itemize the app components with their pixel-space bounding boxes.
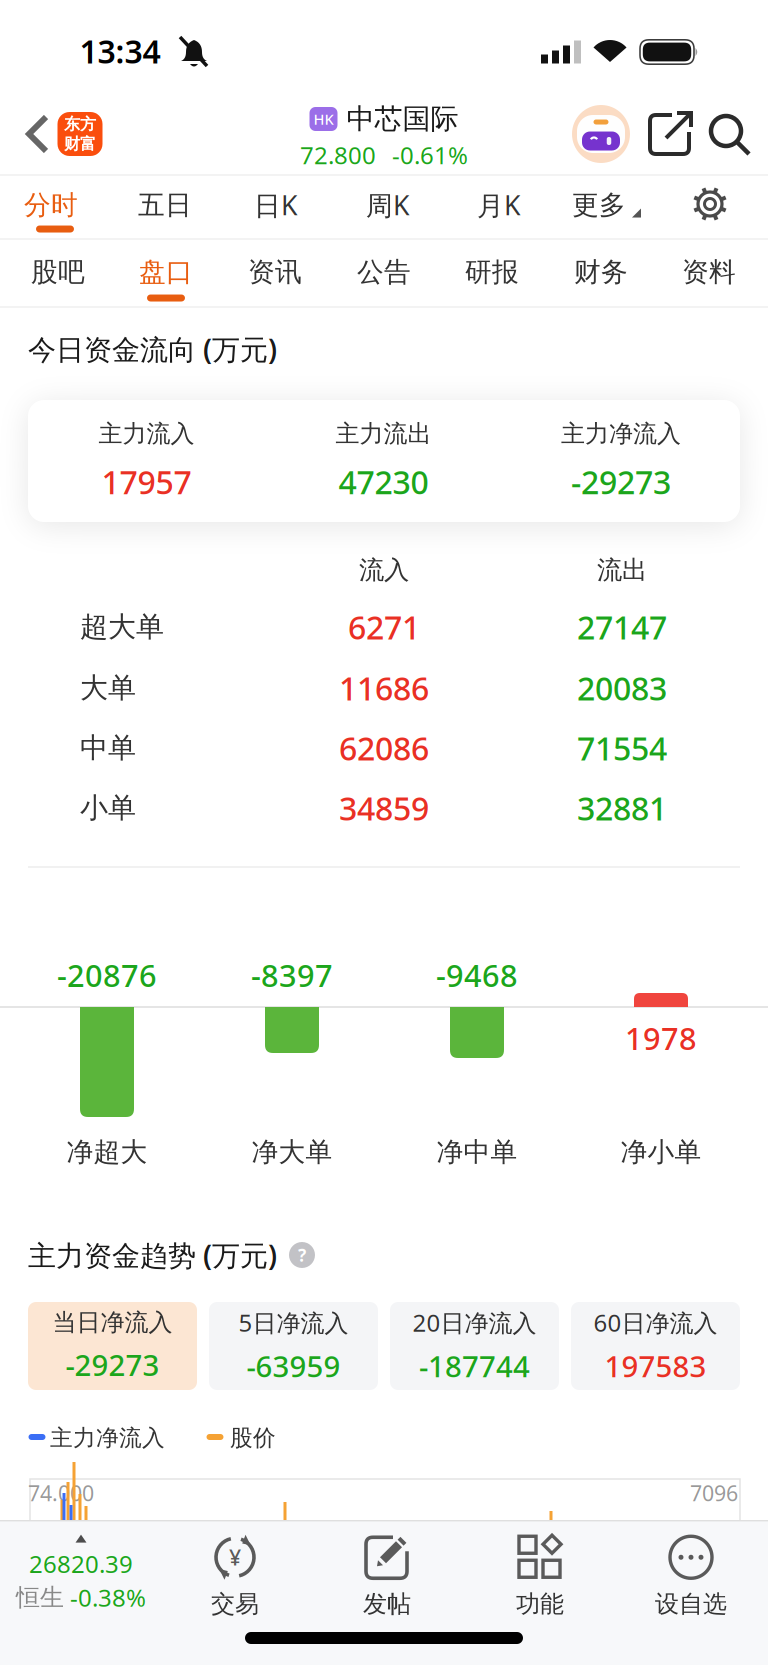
staticText: -29273: [65, 1345, 159, 1384]
staticText: 中芯国际: [346, 102, 458, 136]
staticText: 功能: [516, 1589, 564, 1619]
button[interactable]: 周K: [338, 177, 438, 233]
staticText: 股价: [230, 1424, 276, 1452]
button[interactable]: 搜索: [706, 111, 752, 157]
staticText: 五日: [138, 189, 192, 221]
staticText: HK: [313, 109, 333, 129]
button[interactable]: 研报: [440, 244, 544, 300]
staticText: 日K: [254, 187, 298, 223]
button[interactable]: 帮助: [289, 1242, 315, 1268]
button[interactable]: 资讯: [223, 244, 327, 300]
staticText: -187744: [419, 1346, 530, 1385]
staticText: 20日净流入: [412, 1307, 536, 1338]
staticText: 今日资金流向 (万元): [28, 330, 277, 368]
staticText: -9468: [436, 955, 518, 995]
staticText: -29273: [571, 460, 671, 503]
button[interactable]: Back: [15, 106, 59, 162]
button[interactable]: 交易: [165, 1520, 305, 1632]
button[interactable]: 日K: [226, 177, 326, 233]
staticText: 34859: [339, 787, 429, 829]
staticText: -8397: [251, 955, 333, 995]
staticText: 盘口: [139, 256, 193, 288]
staticText: 净小单: [620, 1136, 701, 1168]
button[interactable]: 财务: [549, 244, 653, 300]
button[interactable]: 分享: [646, 110, 694, 158]
staticText: 6271: [348, 606, 420, 648]
staticText: 32881: [577, 787, 667, 829]
staticText: 更多: [572, 189, 626, 221]
staticText: -0.61%: [392, 139, 468, 171]
button[interactable]: 股吧: [6, 244, 110, 300]
staticText: 当日净流入: [52, 1308, 172, 1337]
staticText: 60日净流入: [593, 1307, 717, 1338]
button[interactable]: 20日净流入: [390, 1302, 559, 1390]
staticText: -63959: [246, 1346, 340, 1385]
staticText: 月K: [477, 187, 521, 223]
button[interactable]: 设自选: [621, 1520, 761, 1632]
button[interactable]: 5日净流入: [209, 1302, 378, 1390]
staticText: 74.000: [28, 1479, 94, 1507]
staticText: 东方: [64, 114, 96, 134]
staticText: 27147: [577, 606, 667, 648]
staticText: 62086: [339, 727, 429, 769]
button[interactable]: 东方财富: [57, 112, 102, 156]
button[interactable]: 当日净流入: [28, 1302, 197, 1390]
staticText: 流入: [359, 554, 409, 585]
button[interactable]: 恒生指数: [0, 1518, 176, 1630]
staticText: 主力净流入: [561, 419, 681, 448]
staticText: 11686: [339, 667, 429, 709]
staticText: 恒生: [16, 1583, 64, 1612]
staticText: 净中单: [436, 1136, 517, 1168]
staticText: 设自选: [655, 1589, 727, 1619]
staticText: 财富: [64, 134, 96, 154]
staticText: 72.800: [300, 139, 376, 171]
button[interactable]: 公告: [332, 244, 436, 300]
button[interactable]: 更多: [549, 177, 649, 233]
staticText: 197583: [604, 1346, 706, 1385]
button[interactable]: 五日: [115, 177, 215, 233]
staticText: 主力净流入: [50, 1424, 165, 1452]
button[interactable]: 发帖: [317, 1520, 457, 1632]
button[interactable]: 设置: [690, 184, 730, 224]
staticText: 26820.39: [29, 1548, 133, 1579]
staticText: 财务: [574, 256, 628, 288]
staticText: 净超大: [66, 1136, 147, 1168]
staticText: 周K: [366, 187, 410, 223]
staticText: 研报: [465, 256, 519, 288]
staticText: 主力流出: [335, 419, 431, 448]
staticText: -20876: [57, 955, 157, 995]
button[interactable]: 智能助手: [572, 105, 630, 163]
staticText: 净大单: [251, 1136, 332, 1168]
staticText: 20083: [577, 667, 667, 709]
staticText: 资料: [682, 256, 736, 288]
staticText: 大单: [80, 671, 136, 705]
staticText: 1978: [625, 1018, 697, 1058]
staticText: ?: [298, 1243, 306, 1266]
staticText: 分时: [24, 189, 78, 221]
button[interactable]: 功能: [470, 1520, 610, 1632]
staticText: 47230: [338, 460, 428, 503]
staticText: 7096: [690, 1479, 738, 1507]
staticText: 股吧: [31, 256, 85, 288]
staticText: 交易: [211, 1589, 259, 1619]
staticText: 13:34: [79, 30, 160, 72]
staticText: 小单: [80, 791, 136, 825]
staticText: ¥: [229, 1543, 241, 1571]
staticText: 资讯: [248, 256, 302, 288]
staticText: 17957: [101, 460, 191, 503]
staticText: 超大单: [80, 610, 164, 644]
button[interactable]: 60日净流入: [571, 1302, 740, 1390]
staticText: 5日净流入: [238, 1307, 348, 1338]
staticText: 中单: [80, 731, 136, 765]
staticText: 主力流入: [98, 419, 194, 448]
button[interactable]: 月K: [449, 177, 549, 233]
button[interactable]: 资料: [657, 244, 761, 300]
staticText: 71554: [577, 727, 667, 769]
staticText: 发帖: [363, 1589, 411, 1619]
button[interactable]: 分时: [1, 177, 101, 233]
button[interactable]: 盘口: [114, 244, 218, 300]
staticText: -0.38%: [70, 1581, 146, 1613]
staticText: 公告: [357, 256, 411, 288]
staticText: 主力资金趋势 (万元): [28, 1236, 277, 1274]
staticText: 流出: [597, 554, 647, 585]
